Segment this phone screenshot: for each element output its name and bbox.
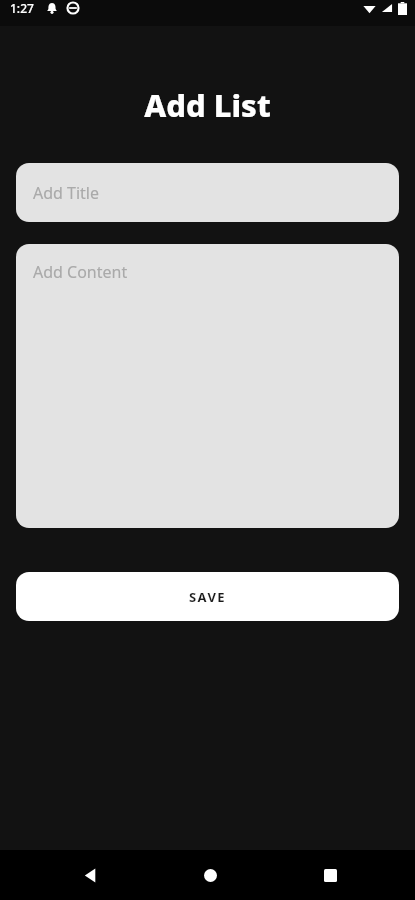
button[interactable]: Home	[190, 855, 230, 895]
button[interactable]: Recent apps	[310, 855, 350, 895]
button[interactable]: Add Content	[16, 244, 399, 528]
staticText: 1:27	[10, 0, 34, 16]
button[interactable]: Back	[70, 855, 110, 895]
button[interactable]: Add Title	[16, 163, 399, 222]
staticText: Add Title	[33, 182, 100, 204]
staticText: SAVE	[189, 588, 226, 606]
staticText: Add Content	[33, 261, 128, 283]
button[interactable]: SAVE	[16, 572, 399, 621]
staticText: Add List	[0, 84, 415, 126]
